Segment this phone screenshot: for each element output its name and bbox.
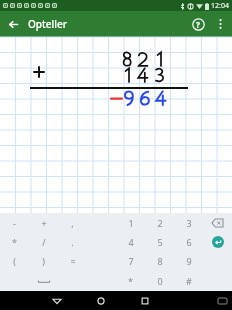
button[interactable]: Enter [203,232,232,251]
staticText: 3 [186,217,192,229]
button[interactable]: ( [0,251,29,271]
button[interactable]: Back [47,291,66,310]
staticText: ? [196,19,200,30]
staticText: 2 [157,217,163,229]
staticText: 0 [157,275,163,287]
staticText: . [71,236,74,248]
staticText: = [70,255,76,267]
staticText: 1 [128,217,134,229]
button[interactable]: 6 [174,232,203,251]
button[interactable]: 5 [145,232,174,251]
staticText: 6 [186,236,192,248]
staticText: / [42,236,46,248]
button[interactable]: 0 [145,271,174,291]
button[interactable]: * [0,232,29,251]
staticText: 12:04 [211,1,229,11]
button[interactable]: 1 [116,213,145,232]
staticText: + [41,217,47,229]
button[interactable]: 7 [116,251,145,271]
staticText: ( [13,255,16,267]
staticText: - [13,217,16,229]
staticText: ) [42,255,45,267]
button[interactable]: 2 [145,213,174,232]
staticText: 9 [186,255,192,267]
button[interactable]: 9 [174,251,203,271]
staticText: 7 [128,255,134,267]
button[interactable]: Help [186,12,210,36]
staticText: 8 [157,255,163,267]
button[interactable]: . [58,232,87,251]
button[interactable]: Keyboard [214,293,230,309]
button[interactable]: * [116,271,145,291]
button[interactable]: / [29,232,58,251]
button[interactable]: + [29,213,58,232]
button[interactable]: , [58,213,87,232]
staticText: * [128,275,133,287]
button[interactable]: 8 [145,251,174,271]
button[interactable]: 4 [116,232,145,251]
button[interactable]: - [0,213,29,232]
button[interactable]: Delete [203,213,232,232]
button[interactable]: = [58,251,87,271]
button[interactable]: Home [91,291,110,310]
button[interactable]: More options [210,14,230,34]
button[interactable]: Recents [135,291,154,310]
staticText: 5 [157,236,163,248]
staticText: , [71,217,74,229]
button[interactable]: ) [29,251,58,271]
button[interactable]: 3 [174,213,203,232]
button[interactable]: # [174,271,203,291]
button[interactable]: Back [0,11,26,37]
staticText: 4 [128,236,134,248]
staticText: Opteller [28,17,67,31]
button[interactable] [29,271,58,291]
staticText: # [186,275,192,287]
staticText: * [12,236,17,248]
